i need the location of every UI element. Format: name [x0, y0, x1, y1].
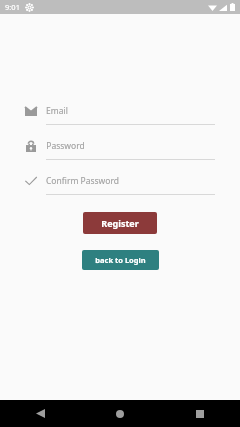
button[interactable]: Home: [80, 400, 160, 427]
button[interactable]: Recent apps: [160, 400, 240, 427]
button[interactable]: Email: [0, 104, 240, 125]
staticText: Email: [46, 105, 68, 117]
button[interactable]: Back: [0, 400, 80, 427]
other: Password: [26, 140, 36, 152]
button[interactable]: Confirm Password: [0, 174, 240, 195]
staticText: back to Login: [95, 255, 146, 265]
button[interactable]: back to Login: [82, 250, 159, 270]
other: Confirm Password: [25, 176, 37, 186]
button[interactable]: Register: [83, 212, 157, 234]
button[interactable]: Password: [0, 139, 240, 160]
staticText: Password: [46, 140, 85, 152]
staticText: 9:01: [5, 2, 20, 12]
other: Email: [25, 107, 37, 116]
staticText: Register: [101, 217, 139, 229]
staticText: Confirm Password: [46, 175, 119, 187]
